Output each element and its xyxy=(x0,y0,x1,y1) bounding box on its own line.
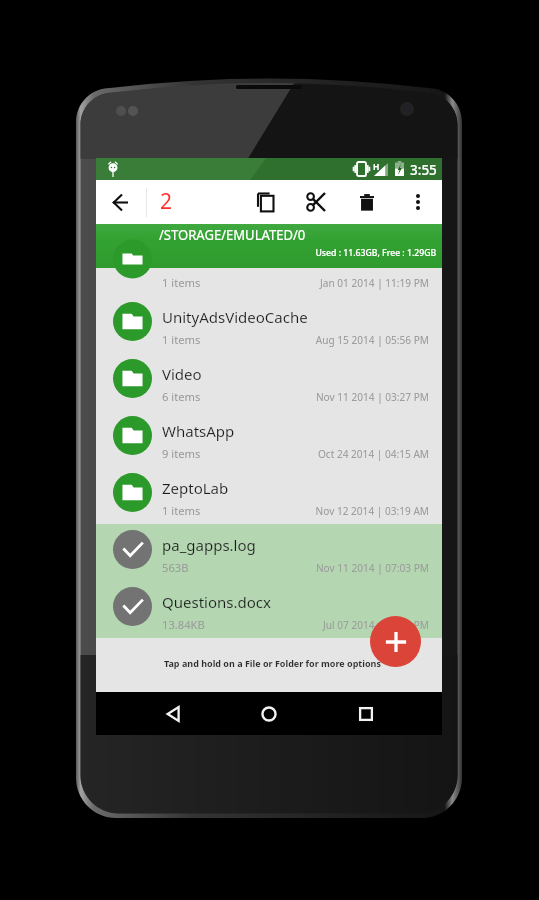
staticText: Video xyxy=(162,364,202,384)
staticText: 1 items xyxy=(162,503,201,518)
staticText: Used : 11.63GB, Free : 1.29GB xyxy=(315,246,437,258)
staticText: 3:55 xyxy=(410,161,437,179)
staticText: /STORAGE/EMULATED/0 xyxy=(159,224,306,244)
staticText: WhatsApp xyxy=(162,421,235,441)
staticText: Nov 11 2014 | 03:27 PM xyxy=(315,390,429,404)
staticText: Jul 07 2014 | 04:11 PM xyxy=(323,618,429,632)
staticText: ZeptoLab xyxy=(162,478,229,498)
button[interactable]: 1 items xyxy=(96,268,442,296)
button[interactable]: ZeptoLab xyxy=(96,467,442,524)
button[interactable]: Add xyxy=(370,616,421,667)
button[interactable]: UnityAdsVideoCache xyxy=(96,296,442,353)
button[interactable]: Questions.docx xyxy=(96,581,442,638)
button[interactable]: More options xyxy=(395,180,440,224)
staticText: Questions.docx xyxy=(162,592,271,612)
button[interactable]: Back xyxy=(153,694,193,734)
staticText: 2 xyxy=(160,187,173,216)
staticText: Aug 15 2014 | 05:56 PM xyxy=(315,333,429,347)
button[interactable]: Cut xyxy=(291,180,341,224)
button[interactable]: Recents xyxy=(346,694,386,734)
staticText: Tap and hold on a File or Folder for mor… xyxy=(164,657,381,669)
staticText: Jan 01 2014 | 11:19 PM xyxy=(319,276,429,290)
staticText: H xyxy=(373,161,380,172)
staticText: 6 items xyxy=(162,389,201,404)
button[interactable]: Home xyxy=(249,694,289,734)
button[interactable]: Copy xyxy=(240,180,290,224)
staticText: pa_gapps.log xyxy=(162,535,256,555)
button[interactable]: Back xyxy=(99,181,141,223)
button[interactable]: Delete xyxy=(342,180,392,224)
staticText: 9 items xyxy=(162,446,201,461)
staticText: Nov 12 2014 | 03:19 AM xyxy=(315,504,429,518)
staticText: 1 items xyxy=(162,275,201,290)
staticText: 13.84KB xyxy=(162,617,205,632)
button[interactable]: Video xyxy=(96,353,442,410)
staticText: UnityAdsVideoCache xyxy=(162,307,308,327)
staticText: Nov 11 2014 | 07:03 PM xyxy=(315,561,429,575)
button[interactable]: WhatsApp xyxy=(96,410,442,467)
staticText: Oct 24 2014 | 04:15 AM xyxy=(317,447,429,461)
button[interactable]: pa_gapps.log xyxy=(96,524,442,581)
staticText: 563B xyxy=(162,560,189,575)
staticText: 1 items xyxy=(162,332,201,347)
